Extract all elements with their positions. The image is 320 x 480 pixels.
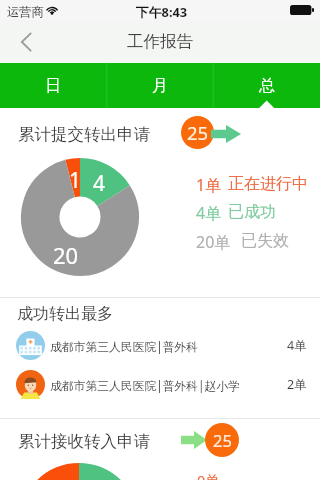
staticText: 25: [187, 120, 209, 145]
staticText: 日: [45, 76, 61, 96]
button[interactable]: Back: [8, 24, 44, 60]
staticText: 1: [69, 166, 82, 195]
staticText: 正在进行中: [228, 174, 308, 194]
staticText: 已成功: [228, 202, 276, 222]
staticText: 总: [259, 76, 275, 96]
staticText: 20单: [196, 231, 231, 253]
staticText: 运营商: [7, 4, 44, 19]
staticText: 1单: [196, 174, 222, 196]
button[interactable]: 成都市第三人民医院|普外科: [0, 331, 320, 360]
staticText: 20: [53, 240, 79, 270]
staticText: 成都市第三人民医院|普外科: [50, 338, 199, 354]
staticText: 已失效: [241, 231, 289, 251]
staticText: 0单: [197, 470, 220, 480]
staticText: 4单: [196, 202, 222, 224]
staticText: 4单: [287, 337, 307, 354]
button[interactable]: 总: [213, 63, 320, 108]
button[interactable]: 日: [0, 63, 106, 108]
staticText: 累计接收转入申请: [18, 431, 150, 452]
staticText: 成都市第三人民医院|普外科|赵小学: [50, 377, 240, 393]
staticText: 2单: [287, 376, 307, 393]
staticText: 25: [213, 429, 232, 451]
staticText: 工作报告: [127, 31, 193, 52]
staticText: 下午8:43: [136, 3, 188, 20]
staticText: 成功转出最多: [17, 304, 113, 324]
staticText: 月: [152, 76, 168, 96]
staticText: 4: [93, 169, 106, 198]
button[interactable]: 成都市第三人民医院|普外科|赵小学: [0, 370, 320, 399]
staticText: 累计提交转出申请: [18, 124, 150, 145]
button[interactable]: 月: [106, 63, 213, 108]
